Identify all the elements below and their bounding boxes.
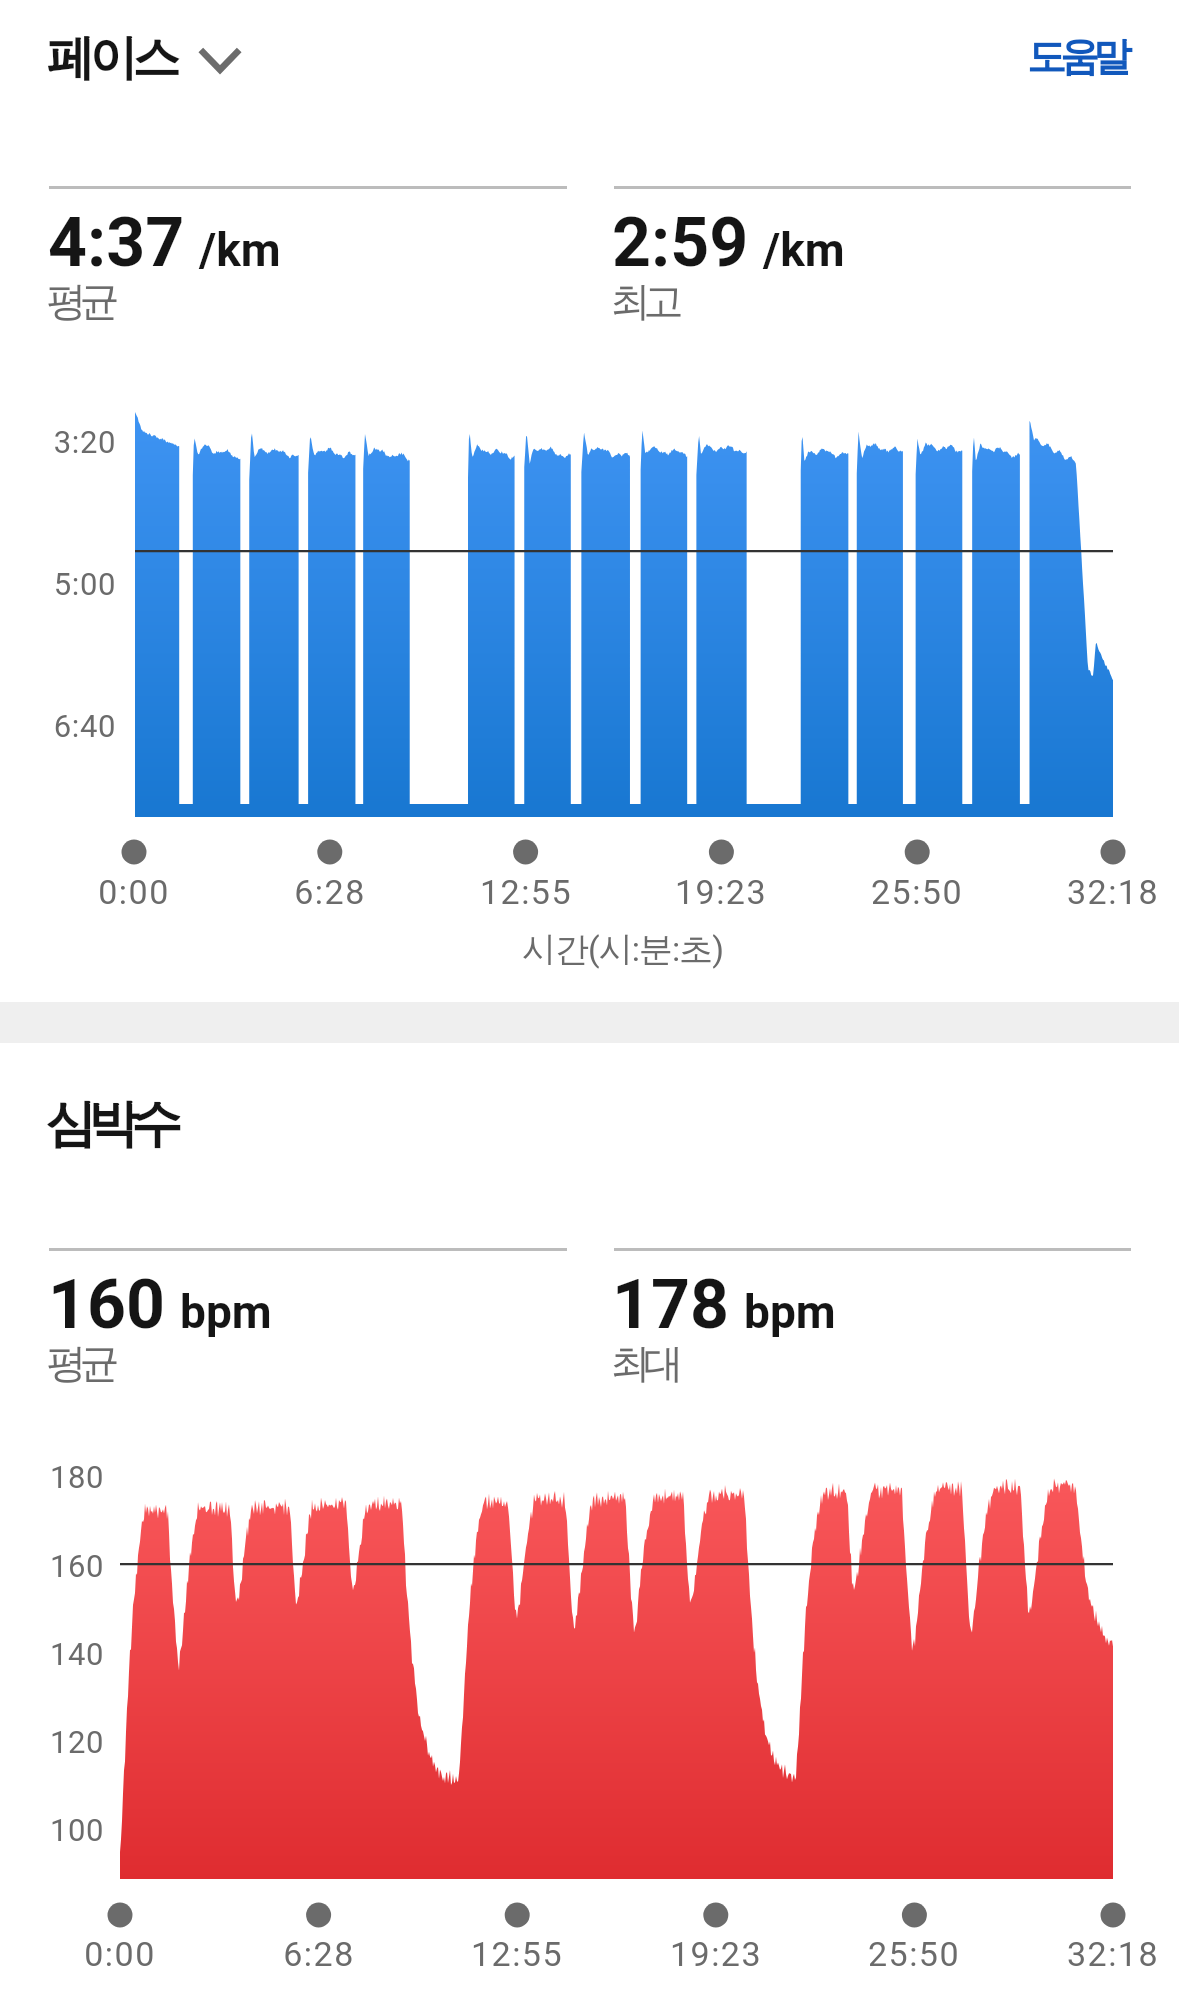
staticText: 19:23 xyxy=(611,872,831,912)
staticText: bpm xyxy=(744,1285,836,1339)
staticText: 도움말 xyxy=(1030,32,1129,81)
staticText: bpm xyxy=(180,1285,272,1339)
staticText: 160 xyxy=(0,1548,104,1584)
staticText: 2:59 xyxy=(612,203,749,283)
staticText: 180 xyxy=(0,1459,104,1495)
staticText: 100 xyxy=(0,1812,104,1848)
staticText: 19:23 xyxy=(606,1934,826,1974)
other: 지표 선택 xyxy=(196,36,244,80)
staticText: 6:28 xyxy=(220,872,440,912)
staticText: 시간(시:분:초) xyxy=(33,928,1179,971)
staticText: 32:18 xyxy=(1003,872,1179,912)
staticText: 178 xyxy=(612,1265,730,1345)
staticText: 6:28 xyxy=(209,1934,429,1974)
staticText: 0:00 xyxy=(24,872,244,912)
staticText: 120 xyxy=(0,1724,104,1760)
staticText: 평균 xyxy=(50,276,116,326)
staticText: 4:37 xyxy=(48,203,185,283)
staticText: 140 xyxy=(0,1636,104,1672)
staticText: 25:50 xyxy=(804,1934,1024,1974)
staticText: /km xyxy=(763,223,845,277)
staticText: /km xyxy=(199,223,281,277)
staticText: 0:00 xyxy=(10,1934,230,1974)
staticText: 32:18 xyxy=(1003,1934,1179,1974)
staticText: 3:20 xyxy=(0,424,116,460)
button[interactable]: 도움말 xyxy=(1010,20,1149,93)
staticText: 평균 xyxy=(50,1338,116,1388)
staticText: 최대 xyxy=(614,1338,680,1388)
staticText: 12:55 xyxy=(407,1934,627,1974)
staticText: 12:55 xyxy=(416,872,636,912)
staticText: 25:50 xyxy=(807,872,1027,912)
staticText: 5:00 xyxy=(0,566,116,602)
staticText: 페이스 xyxy=(49,28,178,88)
button[interactable]: 페이스 xyxy=(35,20,258,96)
staticText: 최고 xyxy=(614,276,680,326)
staticText: 심박수 xyxy=(49,1092,178,1156)
staticText: 6:40 xyxy=(0,708,116,744)
staticText: 160 xyxy=(48,1265,166,1345)
